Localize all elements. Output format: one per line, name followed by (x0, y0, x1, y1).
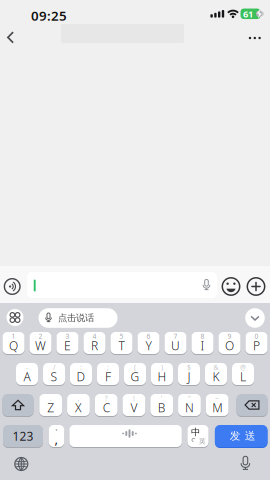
button[interactable]: . (39, 394, 62, 417)
button[interactable]: Chinese English toggle (187, 425, 208, 448)
button[interactable]: Voice message (4, 278, 21, 295)
staticText: X (75, 399, 82, 415)
staticText: W (35, 337, 46, 353)
staticText: 4 (92, 332, 96, 341)
button[interactable]: Keyboard panels (6, 309, 23, 326)
staticText: 0 (254, 332, 258, 341)
staticText: ! (133, 394, 135, 403)
staticText: . (50, 394, 52, 403)
button[interactable]: 0 (245, 332, 267, 355)
staticText: A (23, 368, 30, 384)
staticText: M (212, 399, 222, 415)
button[interactable]: 6 (137, 332, 159, 355)
staticText: F (105, 368, 111, 384)
button[interactable]: Emoji (222, 277, 240, 296)
staticText: ? (105, 394, 108, 403)
button[interactable]: Numbers (3, 425, 43, 448)
staticText: D (76, 368, 85, 384)
button[interactable]: ~ (206, 394, 228, 417)
staticText: B (158, 399, 166, 415)
staticText: , (54, 430, 58, 447)
staticText: @ (240, 363, 246, 372)
button[interactable]: ' (150, 394, 173, 417)
button[interactable]: More functions (247, 277, 265, 296)
button[interactable]: 4 (83, 332, 105, 355)
button[interactable]: Switch keyboard (14, 457, 28, 471)
button[interactable]: Delete (236, 394, 267, 417)
staticText: Y (145, 337, 151, 353)
staticText: 点击说话 (58, 312, 94, 324)
button[interactable]: Shift (2, 394, 33, 417)
button[interactable]: Dictation (239, 456, 251, 471)
button[interactable]: ) (151, 363, 173, 386)
staticText: P (253, 337, 260, 353)
button[interactable]: , (67, 394, 90, 417)
button[interactable]: " (178, 394, 201, 417)
button[interactable]: ( (124, 363, 146, 386)
staticText: ; (107, 363, 109, 372)
staticText: K (212, 368, 219, 384)
staticText: / (53, 363, 55, 372)
staticText: 09:25 (31, 7, 67, 24)
staticText: 发送 (230, 429, 256, 442)
button[interactable]: Space (69, 425, 182, 448)
staticText: ' (161, 394, 163, 403)
staticText: " (188, 394, 191, 403)
staticText: : (80, 363, 82, 372)
button[interactable]: 3 (56, 332, 78, 355)
staticText: Q (9, 337, 18, 353)
staticText: T (118, 337, 124, 353)
staticText: L (240, 368, 246, 384)
button[interactable]: More (246, 31, 264, 45)
button[interactable]: ? (95, 394, 118, 417)
staticText: I (200, 337, 204, 353)
staticText: 5 (119, 332, 123, 341)
button[interactable]: 9 (218, 332, 240, 355)
staticText: ) (161, 363, 163, 372)
staticText: $ (187, 363, 191, 372)
staticText: 123 (12, 428, 33, 444)
button[interactable]: 2 (29, 332, 51, 355)
staticText: 中 (191, 426, 200, 438)
staticText: U (171, 337, 180, 353)
button[interactable]: Hide keyboard (245, 308, 265, 328)
button[interactable]: - (16, 363, 38, 386)
button[interactable]: , (49, 425, 64, 448)
button[interactable]: / (43, 363, 65, 386)
staticText: E (64, 337, 71, 353)
staticText: 7 (173, 332, 177, 341)
staticText: 3 (65, 332, 69, 341)
button[interactable]: : (70, 363, 92, 386)
button[interactable]: Send (215, 425, 267, 448)
staticText: 9 (227, 332, 231, 341)
button[interactable]: 7 (164, 332, 186, 355)
staticText: 8 (200, 332, 204, 341)
staticText: , (77, 394, 79, 403)
staticText: 英 (199, 437, 206, 445)
button[interactable]: ; (97, 363, 119, 386)
staticText: V (130, 399, 137, 415)
button[interactable]: 8 (191, 332, 213, 355)
staticText: N (185, 399, 194, 415)
button[interactable]: Back (4, 30, 18, 46)
button[interactable]: & (205, 363, 227, 386)
staticText: H (157, 368, 166, 384)
staticText: R (91, 337, 98, 353)
staticText: G (130, 368, 139, 384)
button[interactable]: 5 (110, 332, 132, 355)
staticText: C (103, 399, 110, 415)
staticText: S (50, 368, 57, 384)
staticText: O (225, 337, 234, 353)
button[interactable]: $ (178, 363, 200, 386)
button[interactable]: 1 (2, 332, 24, 355)
staticText: ~ (215, 394, 219, 403)
staticText: & (213, 363, 218, 372)
button[interactable]: Message input (27, 272, 217, 298)
staticText: 1 (11, 332, 15, 341)
button[interactable]: @ (232, 363, 254, 386)
staticText: 2 (38, 332, 42, 341)
button[interactable]: Hold to talk (38, 308, 117, 328)
staticText: 6 (146, 332, 150, 341)
staticText: J (187, 368, 190, 384)
button[interactable]: ! (123, 394, 145, 417)
